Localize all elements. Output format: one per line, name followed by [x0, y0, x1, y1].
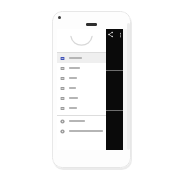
button[interactable]	[57, 93, 106, 103]
button[interactable]	[57, 63, 106, 73]
button[interactable]	[57, 103, 106, 113]
button[interactable]	[57, 126, 106, 136]
button[interactable]	[57, 53, 106, 63]
button[interactable]: Share	[107, 31, 114, 38]
button[interactable]: More options	[118, 32, 123, 38]
button[interactable]	[57, 116, 106, 126]
button[interactable]	[57, 83, 106, 93]
button[interactable]	[57, 73, 106, 83]
